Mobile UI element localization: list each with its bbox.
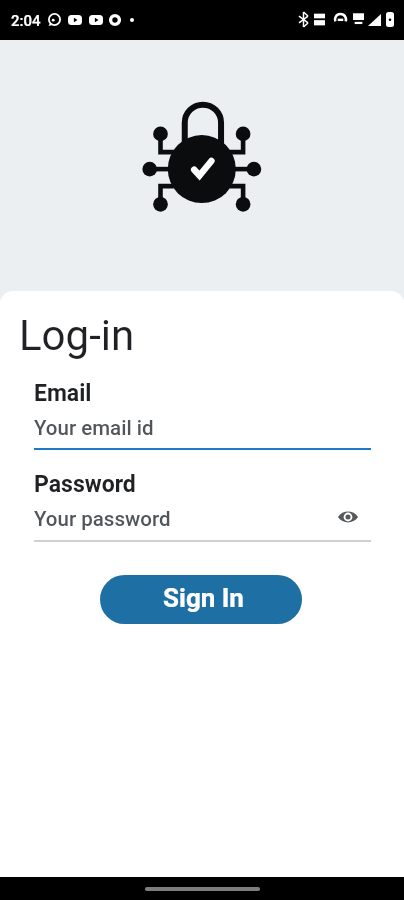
staticText: Log-in (19, 311, 135, 360)
staticText: 2:04 (11, 12, 41, 30)
staticText: Password (34, 471, 136, 498)
staticText: Your password (34, 507, 171, 531)
staticText: Email (34, 380, 92, 407)
button[interactable]: Sign In (100, 575, 302, 624)
button[interactable]: Show password (334, 503, 362, 531)
staticText: Your email id (34, 416, 154, 440)
staticText: Sign In (163, 583, 244, 613)
